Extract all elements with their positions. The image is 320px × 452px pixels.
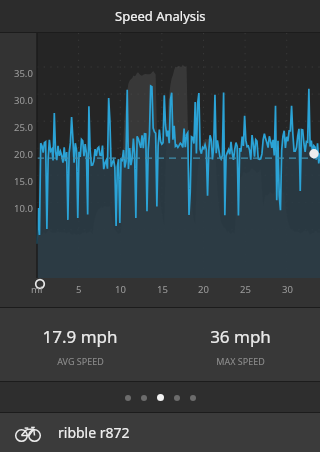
staticText: 30 [282, 283, 293, 296]
button[interactable]: Bike: ribble r872 [0, 413, 320, 452]
button[interactable]: 36 mph [160, 308, 320, 367]
staticText: AVG SPEED [57, 355, 104, 367]
staticText: 20.0 [14, 148, 33, 161]
other: Bike: ribble r872 [14, 419, 42, 447]
staticText: 30.0 [14, 94, 33, 107]
staticText: 20 [198, 283, 209, 296]
button[interactable] [157, 394, 164, 401]
staticText: 15 [157, 283, 168, 296]
staticText: 10 [115, 283, 126, 296]
staticText: 5 [76, 283, 82, 296]
staticText: 36 mph [210, 325, 271, 348]
staticText: 15.0 [14, 175, 33, 188]
button[interactable] [141, 395, 147, 401]
staticText: MAX SPEED [216, 355, 265, 367]
button[interactable] [190, 395, 196, 401]
staticText: ribble r872 [58, 423, 130, 442]
staticText: 25 [240, 283, 251, 296]
staticText: 10.0 [14, 202, 33, 215]
button[interactable]: 17.9 mph [0, 308, 160, 367]
staticText: 17.9 mph [42, 325, 118, 348]
staticText: mi [31, 283, 43, 296]
staticText: 25.0 [14, 121, 33, 134]
staticText: Speed Analysis [115, 7, 206, 25]
button[interactable] [174, 395, 180, 401]
button[interactable] [125, 395, 131, 401]
staticText: 35.0 [14, 67, 33, 80]
